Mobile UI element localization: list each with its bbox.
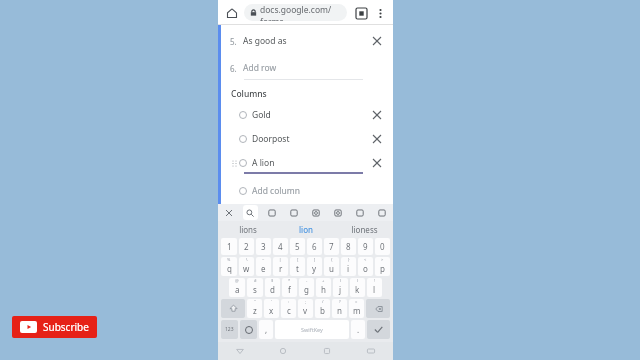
button[interactable]: ; [298,299,313,318]
button[interactable]: [ [290,257,305,276]
button[interactable]: } [341,257,356,276]
button[interactable]: " [247,299,262,318]
button[interactable]: Close [218,204,239,221]
button[interactable]: 3 [256,238,271,255]
button[interactable]: Settings [305,204,327,221]
button[interactable]: Notes [349,204,371,221]
button[interactable]: 5 [290,238,305,255]
staticText: SwiftKey [301,326,323,333]
button[interactable]: # [247,278,263,297]
staticText: n [337,305,342,316]
staticText: ( [340,278,342,283]
button[interactable]: * [282,278,297,297]
button[interactable]: lion [277,221,335,237]
button[interactable]: Hide keyboard [349,342,393,360]
button[interactable]: GIF [261,204,283,221]
button[interactable]: - [299,278,314,297]
staticText: | [279,257,282,262]
staticText: 0 [380,241,385,252]
button[interactable]: Numbers [221,320,238,339]
button[interactable]: Remove [369,34,385,48]
button[interactable]: Remove [369,156,385,170]
button[interactable]: . [351,320,365,339]
button[interactable]: Remove [369,108,385,122]
button[interactable]: 9 [358,238,373,255]
button[interactable]: docs.google.com/forms [244,4,347,21]
staticText: 1 [227,241,232,252]
staticText: u [329,263,334,274]
button[interactable]: 6 [307,238,322,255]
button[interactable]: = [349,299,364,318]
button[interactable]: % [221,257,237,276]
button[interactable]: Shift [221,299,245,318]
staticText: 5 [295,241,300,252]
staticText: 6 [312,241,317,252]
button[interactable]: ) [350,278,365,297]
button[interactable]: @ [229,278,245,297]
staticText: { [331,257,333,262]
button[interactable]: Pin [371,204,393,221]
button[interactable]: ? [332,299,347,318]
button[interactable]: 2 [239,238,254,255]
staticText: w [243,263,250,274]
button[interactable]: A lion [230,156,385,170]
button[interactable]: Backspace [366,299,390,318]
staticText: } [348,257,350,262]
staticText: k [355,284,360,295]
button[interactable]: { [324,257,339,276]
button[interactable]: $ [265,278,280,297]
button[interactable]: Stickers [327,204,349,221]
staticText: i [347,263,350,274]
button[interactable]: Home [261,342,305,360]
button[interactable]: 0 [375,238,390,255]
button[interactable]: 1 [221,238,237,255]
button[interactable]: lions [218,221,277,237]
button[interactable]: ] [307,257,322,276]
button[interactable]: \ [239,257,254,276]
button[interactable]: | [273,257,288,276]
staticText: lioness [351,224,378,235]
button[interactable]: ~ [256,257,271,276]
button[interactable]: Search [239,204,261,221]
staticText: ] [314,257,316,262]
staticText: / [322,299,324,304]
button[interactable]: Back [218,342,261,360]
staticText: ? [339,299,341,304]
button[interactable]: 6. [230,61,385,75]
staticText: docs.google.com/forms [260,4,347,21]
button[interactable]: ( [333,278,348,297]
button[interactable]: Emoji [240,320,257,339]
button[interactable]: Enter [367,320,390,339]
staticText: # [254,278,257,283]
staticText: = [355,299,358,304]
button[interactable]: Space [275,320,349,339]
button[interactable]: Gold [230,108,385,122]
staticText: < [364,257,367,262]
button[interactable]: More options [371,4,389,22]
button[interactable]: < [358,257,373,276]
button[interactable]: 8 [341,238,356,255]
button[interactable]: Clipboard [283,204,305,221]
button[interactable]: + [316,278,331,297]
button[interactable]: lioness [335,221,393,237]
button[interactable]: Doorpost [230,132,385,146]
button[interactable]: 5. [230,34,385,48]
button[interactable]: / [315,299,330,318]
button[interactable]: 4 [273,238,288,255]
button[interactable]: ! [367,278,382,297]
button[interactable]: Remove [369,132,385,146]
button[interactable]: Tabs [351,3,371,23]
button[interactable]: 7 [324,238,339,255]
button[interactable]: Add column [230,184,385,198]
button[interactable]: Recents [305,342,349,360]
staticText: + [322,278,325,283]
staticText: " [254,299,256,304]
staticText: q [227,263,232,274]
button[interactable]: : [281,299,296,318]
button[interactable]: Subscribe [12,316,97,338]
button[interactable]: , [259,320,273,339]
button[interactable]: Home [222,3,242,23]
button[interactable]: > [375,257,390,276]
staticText: , [265,324,268,335]
button[interactable]: ' [264,299,279,318]
